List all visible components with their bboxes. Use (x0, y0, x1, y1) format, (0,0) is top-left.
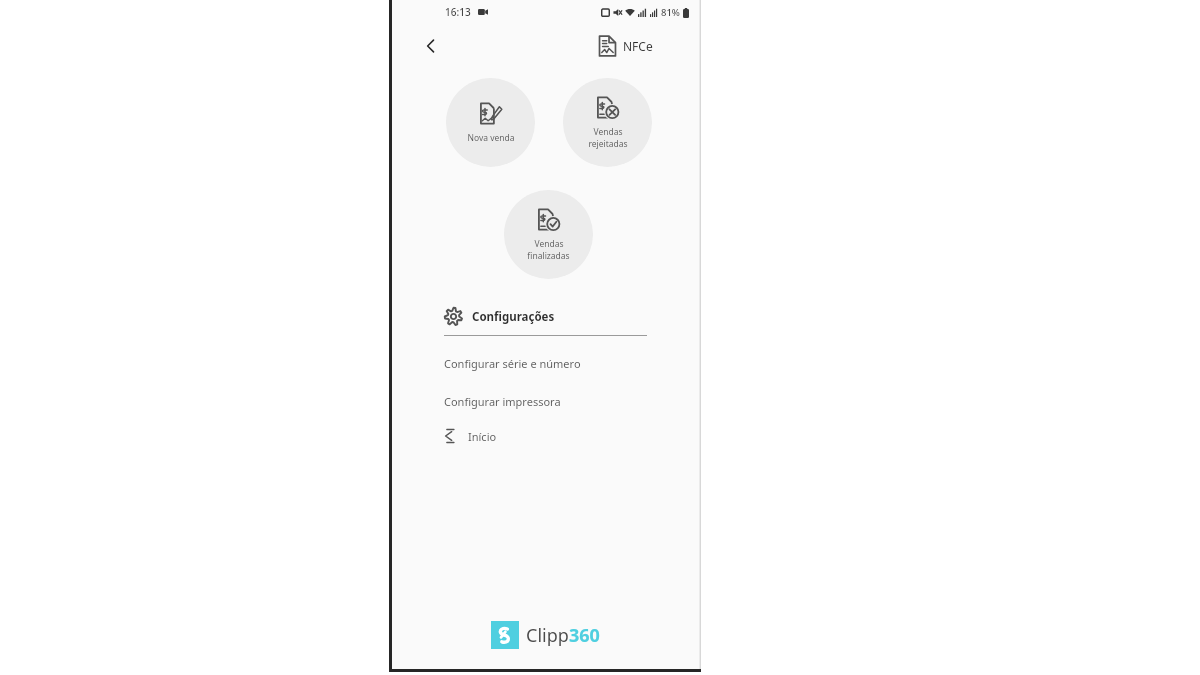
button[interactable]: Vendas (504, 190, 593, 279)
button[interactable]: Back (416, 31, 446, 61)
button[interactable]: Nova venda (446, 78, 535, 167)
button[interactable]: Vendas (563, 78, 652, 167)
staticText: Configurar impressora (444, 394, 561, 409)
staticText: Configurar série e número (444, 356, 581, 371)
button[interactable]: NFCe (598, 35, 653, 57)
staticText: 360 (569, 623, 600, 648)
staticText: 81% (661, 6, 680, 19)
button[interactable]: Clipp (392, 621, 699, 649)
staticText: Vendas (593, 126, 623, 138)
staticText: Configurações (472, 309, 555, 325)
button[interactable]: Configurar série e número (444, 356, 647, 371)
staticText: NFCe (623, 38, 653, 54)
staticText: Nova venda (467, 132, 515, 144)
staticText: finalizadas (527, 250, 570, 262)
staticText: rejeitadas (588, 138, 628, 150)
button[interactable]: Início (444, 427, 647, 445)
button[interactable]: Configurações (444, 307, 647, 326)
staticText: Clipp (526, 623, 569, 648)
staticText: Vendas (534, 238, 564, 250)
staticText: 16:13 (445, 5, 471, 19)
staticText: Início (468, 429, 497, 444)
button[interactable]: Configurar impressora (444, 394, 647, 409)
